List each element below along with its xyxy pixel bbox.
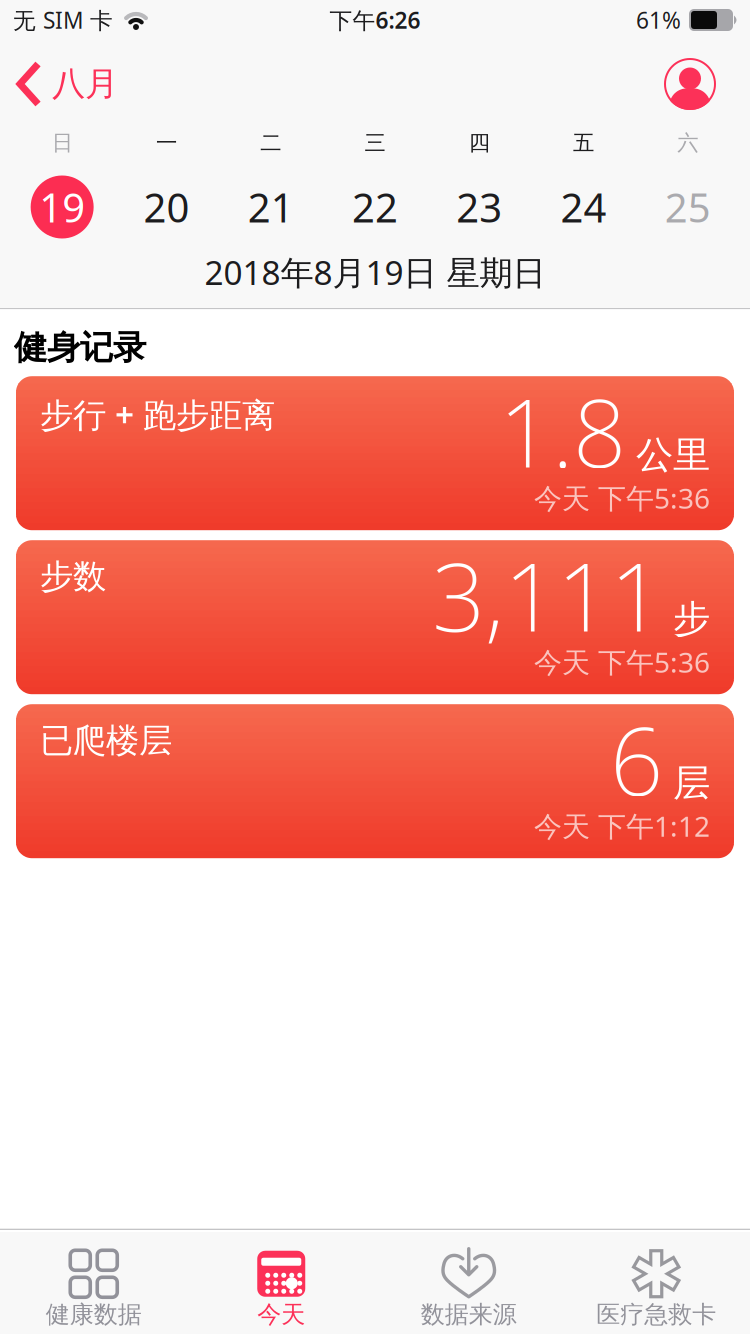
- button[interactable]: 19: [10, 172, 114, 235]
- staticText: 今天: [257, 1300, 305, 1329]
- button[interactable]: 数据来源: [375, 1248, 562, 1329]
- button[interactable]: 个人资料: [664, 58, 716, 110]
- staticText: 健身记录: [14, 327, 146, 368]
- staticText: 20: [143, 180, 189, 233]
- button[interactable]: 20: [114, 177, 219, 230]
- staticText: 今天 下午1:12: [534, 807, 710, 844]
- button[interactable]: 今天: [187, 1248, 375, 1329]
- staticText: 步数: [40, 556, 106, 597]
- staticText: 3,111: [432, 533, 663, 657]
- staticText: 数据来源: [421, 1300, 517, 1329]
- staticText: 21: [248, 180, 294, 233]
- staticText: 61%: [636, 5, 681, 35]
- staticText: 健康数据: [46, 1300, 142, 1329]
- staticText: 23: [456, 180, 502, 233]
- staticText: 医疗急救卡: [596, 1300, 716, 1329]
- button[interactable]: 21: [219, 177, 323, 230]
- staticText: 下午6:26: [329, 5, 420, 35]
- staticText: 19: [39, 180, 85, 233]
- button[interactable]: 健康数据: [0, 1248, 187, 1329]
- staticText: 日: [52, 130, 73, 156]
- staticText: 24: [561, 180, 607, 233]
- staticText: 六: [677, 130, 698, 156]
- button[interactable]: 步行 + 跑步距离: [16, 376, 734, 530]
- staticText: 无 SIM 卡: [13, 5, 113, 35]
- staticText: 步行 + 跑步距离: [40, 392, 275, 436]
- staticText: 层: [673, 760, 710, 806]
- staticText: 已爬楼层: [40, 720, 172, 761]
- staticText: 22: [352, 180, 398, 233]
- button[interactable]: 22: [323, 177, 427, 230]
- staticText: 四: [469, 130, 490, 156]
- staticText: 五: [573, 130, 594, 156]
- staticText: 步: [673, 596, 710, 642]
- staticText: 2018年8月19日 星期日: [204, 250, 545, 294]
- staticText: 6: [610, 697, 663, 821]
- staticText: 1.8: [499, 369, 626, 493]
- staticText: 二: [260, 130, 281, 156]
- button[interactable]: 八月: [16, 61, 118, 107]
- button[interactable]: 24: [531, 177, 636, 230]
- button[interactable]: 已爬楼层: [16, 704, 734, 858]
- button[interactable]: 23: [427, 177, 531, 230]
- button[interactable]: 医疗急救卡: [562, 1248, 750, 1329]
- staticText: 一: [156, 130, 177, 156]
- button[interactable]: 25: [636, 177, 740, 230]
- staticText: 今天 下午5:36: [534, 479, 710, 516]
- staticText: 八月: [52, 63, 118, 104]
- staticText: 三: [364, 130, 385, 156]
- staticText: 今天 下午5:36: [534, 643, 710, 680]
- staticText: 25: [665, 180, 711, 233]
- staticText: 公里: [636, 432, 710, 478]
- button[interactable]: 步数: [16, 540, 734, 694]
